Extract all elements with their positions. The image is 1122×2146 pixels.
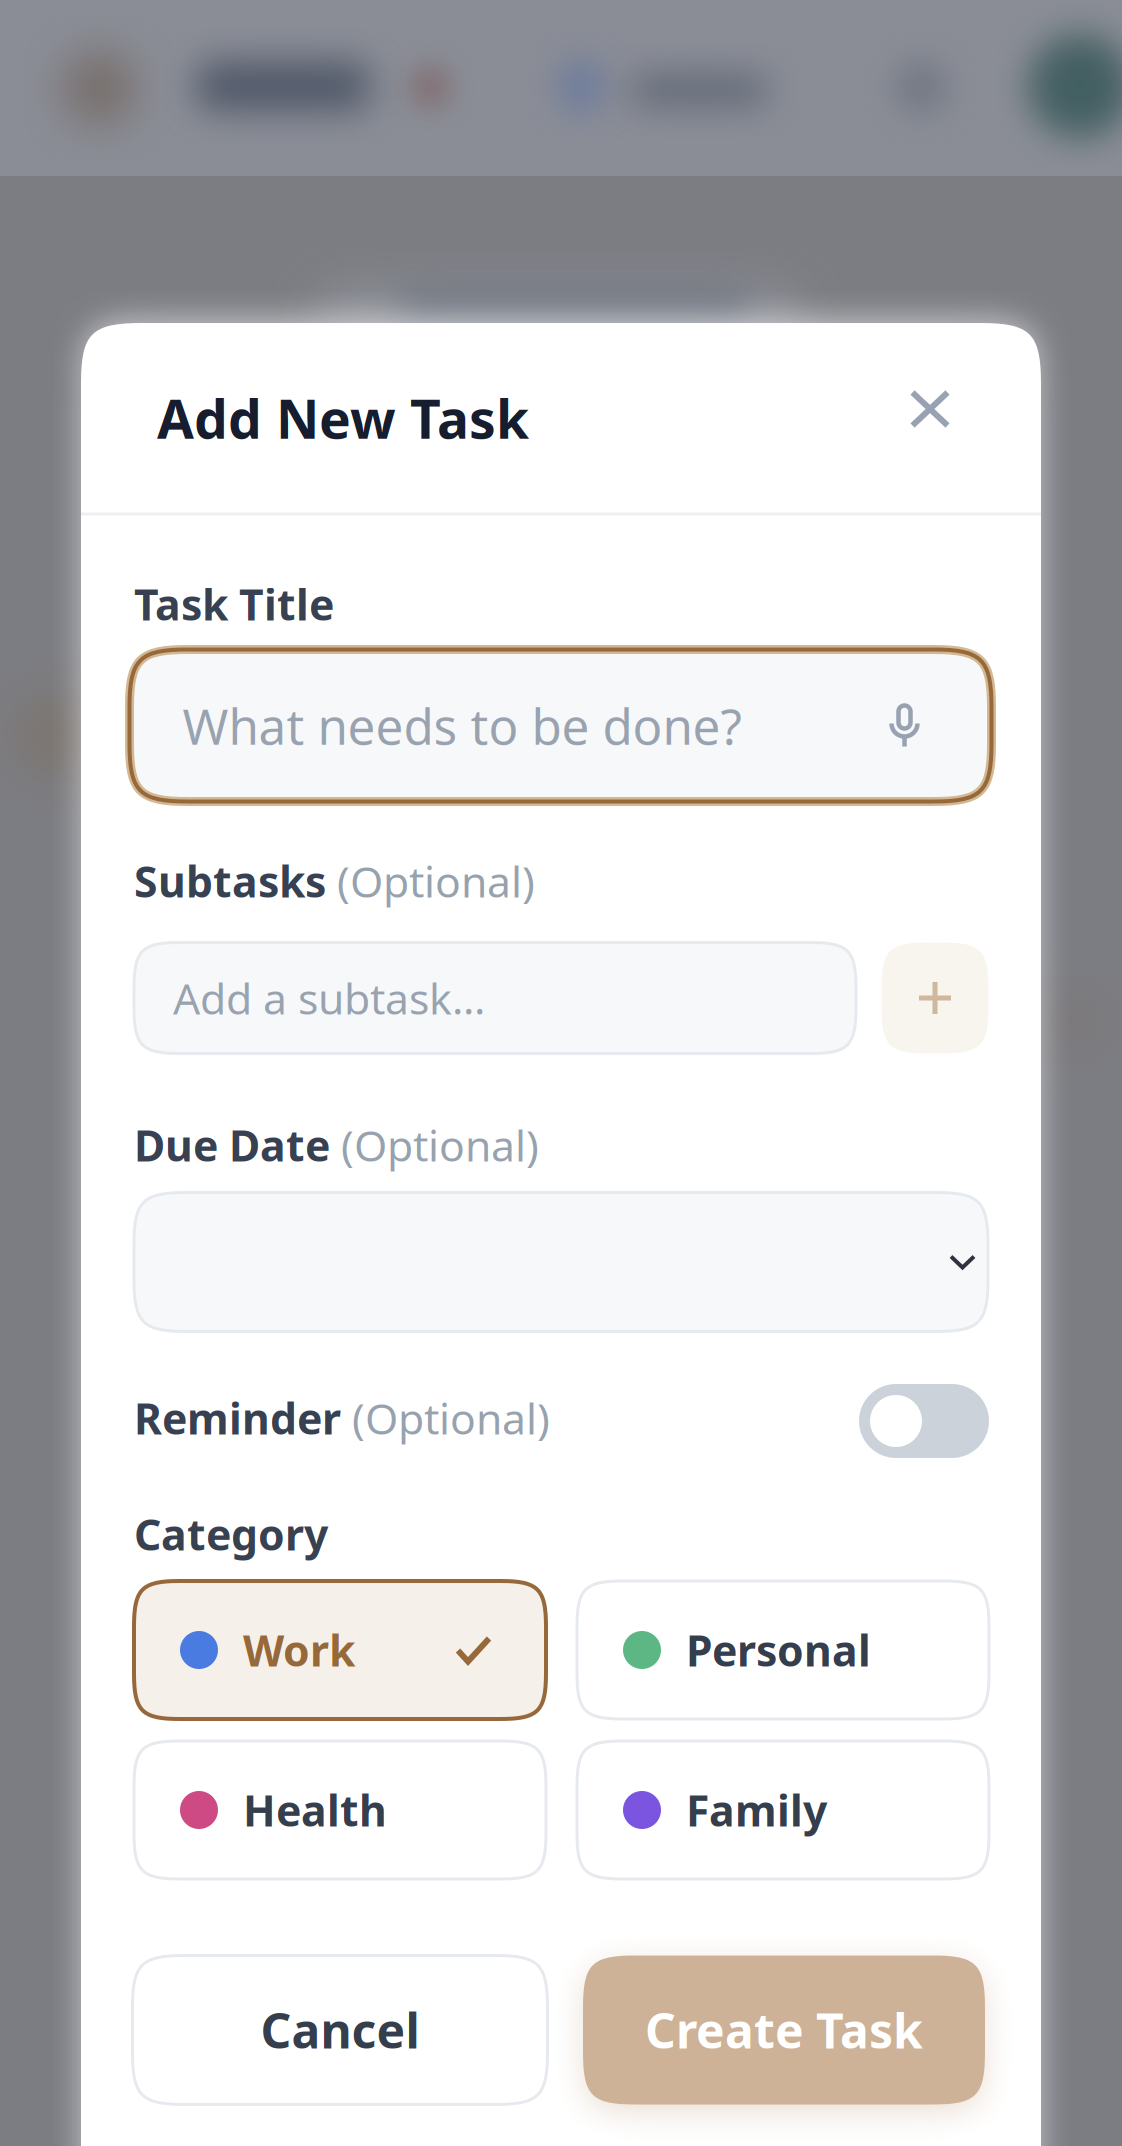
button[interactable]: Create Task [583,1955,985,2104]
button[interactable]: Reminder [859,1384,989,1458]
button[interactable]: Add subtask [881,942,988,1053]
button[interactable]: Cancel [132,1955,547,2104]
staticText: Work [243,1622,355,1678]
button[interactable]: Due date [134,1192,988,1331]
button[interactable]: Close [886,365,974,453]
button[interactable]: Family [577,1741,989,1879]
staticText: Due Date [134,1117,330,1173]
staticText: Create Task [645,1998,923,2062]
staticText: Subtasks [134,853,326,909]
staticText: Reminder [134,1390,341,1446]
staticText: Family [686,1782,827,1838]
button[interactable]: Health [134,1741,546,1879]
staticText: (Optional) [341,1390,550,1446]
staticText: Health [243,1782,387,1838]
staticText: What needs to be done? [182,693,741,758]
button[interactable]: Personal [577,1581,989,1719]
staticText: Personal [686,1622,871,1678]
staticText: Category [134,1506,328,1562]
staticText: Cancel [260,1998,419,2062]
staticText: Add New Task [157,383,529,453]
staticText: (Optional) [330,1117,539,1173]
staticText: (Optional) [326,853,535,909]
staticText: Task Title [134,576,334,632]
staticText: Add a subtask... [173,970,485,1026]
button[interactable]: Work [134,1581,546,1719]
